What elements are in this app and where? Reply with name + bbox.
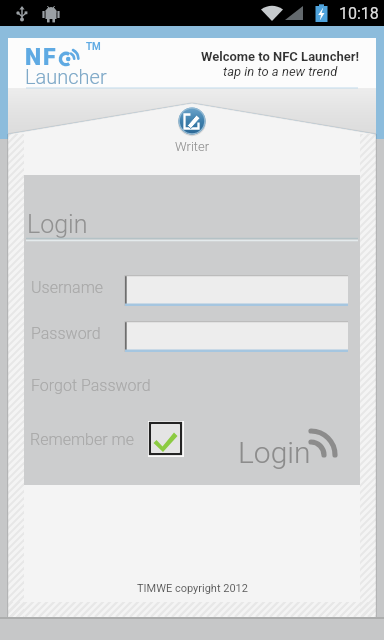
button[interactable]: Username: [125, 275, 348, 306]
button[interactable]: Writer: [160, 107, 224, 154]
staticText: NF: [25, 44, 58, 71]
staticText: TIMWE copyright 2012: [137, 582, 248, 595]
button[interactable]: Password: [125, 321, 348, 352]
staticText: Writer: [175, 139, 210, 154]
staticText: Username: [31, 278, 104, 297]
staticText: Password: [31, 324, 101, 343]
staticText: tap in to a new trend: [223, 64, 338, 79]
staticText: TM: [86, 41, 101, 53]
button[interactable]: Remember me: [148, 421, 184, 457]
staticText: Launcher: [25, 65, 107, 88]
staticText: Welcome to NFC Launcher!: [201, 49, 360, 64]
staticText: 10:18: [339, 4, 379, 23]
staticText: Login: [27, 210, 88, 239]
button[interactable]: Login: [234, 435, 339, 481]
staticText: Remember me: [30, 430, 134, 449]
staticText: Login: [238, 435, 311, 470]
button[interactable]: Forgot Password: [31, 376, 151, 395]
